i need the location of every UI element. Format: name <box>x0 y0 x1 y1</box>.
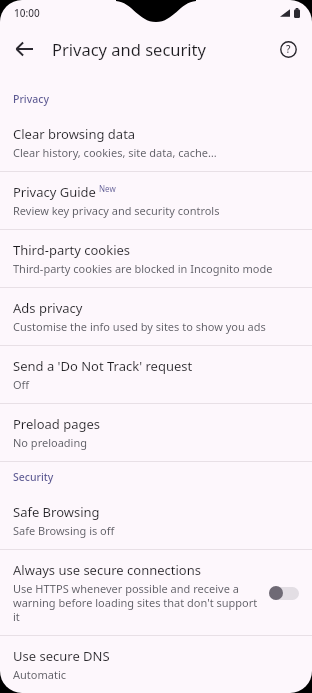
staticText: Send a 'Do Not Track' request <box>13 357 193 375</box>
staticText: Use HTTPS whenever possible and receive … <box>13 581 261 624</box>
staticText: 10:00 <box>14 6 40 20</box>
staticText: Off <box>13 377 30 392</box>
staticText: Review key privacy and security controls <box>13 203 220 218</box>
staticText: New <box>99 183 116 194</box>
staticText: Clear history, cookies, site data, cache… <box>13 145 217 160</box>
button[interactable]: Back <box>6 31 42 67</box>
staticText: No preloading <box>13 435 87 450</box>
button[interactable]: Privacy Guide <box>0 172 312 229</box>
button[interactable]: Use secure DNS <box>0 636 312 693</box>
button[interactable]: Safe Browsing <box>0 492 312 549</box>
staticText: ? <box>286 42 291 56</box>
staticText: Ads privacy <box>13 299 83 317</box>
button[interactable]: Clear browsing data <box>0 114 312 171</box>
button[interactable]: Preload pages <box>0 404 312 461</box>
staticText: Safe Browsing <box>13 503 100 521</box>
staticText: Use secure DNS <box>13 647 110 665</box>
button[interactable]: Third-party cookies <box>0 230 312 287</box>
other: Always use secure connections toggle <box>269 584 299 602</box>
button[interactable]: Ads privacy <box>0 288 312 345</box>
staticText: Always use secure connections <box>13 561 201 579</box>
staticText: Security <box>13 470 54 484</box>
staticText: Customise the info used by sites to show… <box>13 319 266 334</box>
button[interactable]: Help <box>270 31 306 67</box>
button[interactable]: Send a 'Do Not Track' request <box>0 346 312 403</box>
staticText: Privacy Guide <box>13 183 96 201</box>
staticText: Third-party cookies are blocked in Incog… <box>13 261 273 276</box>
staticText: Clear browsing data <box>13 125 136 143</box>
staticText: Preload pages <box>13 415 101 433</box>
staticText: Safe Browsing is off <box>13 523 115 538</box>
staticText: Automatic <box>13 667 66 682</box>
staticText: Privacy <box>13 92 49 106</box>
button[interactable]: Always use secure connections <box>0 550 312 635</box>
staticText: Third-party cookies <box>13 241 131 259</box>
staticText: Privacy and security <box>52 38 206 60</box>
